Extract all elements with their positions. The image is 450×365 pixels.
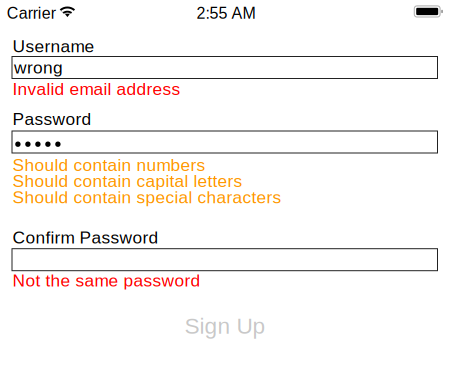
- staticText: Invalid email address: [12, 79, 180, 99]
- staticText: Sign Up: [184, 313, 265, 338]
- staticText: Should contain capital letters: [12, 171, 242, 191]
- staticText: Not the same password: [12, 271, 200, 290]
- staticText: Confirm Password: [12, 228, 158, 247]
- staticText: Should contain numbers: [12, 155, 205, 175]
- staticText: wrong: [14, 58, 63, 77]
- staticText: Should contain special characters: [12, 187, 281, 207]
- staticText: Username: [12, 36, 94, 56]
- staticText: Carrier: [7, 4, 56, 22]
- staticText: 2:55 AM: [196, 4, 255, 22]
- button[interactable]: Sign Up: [0, 304, 450, 348]
- staticText: Password: [12, 109, 91, 129]
